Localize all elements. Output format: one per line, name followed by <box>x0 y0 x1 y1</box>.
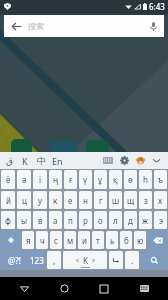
staticText: 123 <box>30 255 44 266</box>
button[interactable]: ғ <box>64 170 77 189</box>
staticText: и <box>82 235 87 246</box>
button[interactable]: Settings <box>116 152 132 169</box>
staticText: ұ <box>98 174 103 185</box>
staticText: у <box>38 195 43 206</box>
button[interactable]: 123 <box>29 251 45 269</box>
button[interactable]: п <box>64 211 77 229</box>
staticText: @?! <box>8 255 21 266</box>
button[interactable]: с <box>50 231 62 249</box>
button[interactable]: и <box>78 231 90 249</box>
staticText: 中 <box>37 155 46 166</box>
button[interactable]: ү <box>79 170 92 189</box>
staticText: ы <box>21 215 28 226</box>
button[interactable]: ю <box>134 231 146 249</box>
staticText: л <box>113 215 118 226</box>
button[interactable]: ө <box>124 170 137 189</box>
button[interactable]: ь <box>106 231 118 249</box>
button[interactable]: Collapse keyboard <box>148 152 164 169</box>
button[interactable]: h <box>139 170 152 189</box>
button[interactable]: Emoji <box>132 152 148 169</box>
button[interactable]: ъ <box>154 170 167 189</box>
button[interactable]: @?! <box>1 251 27 269</box>
button[interactable]: ы <box>17 211 31 229</box>
button[interactable]: к <box>49 191 62 209</box>
button[interactable]: ә <box>17 170 31 189</box>
button[interactable]: K <box>17 152 33 169</box>
button[interactable]: й <box>1 191 15 209</box>
staticText: K <box>22 155 28 167</box>
button[interactable]: м <box>64 231 76 249</box>
button[interactable]: Search <box>141 251 167 269</box>
button[interactable]: н <box>79 191 92 209</box>
button[interactable]: ц <box>17 191 31 209</box>
staticText: ш <box>112 195 120 206</box>
button[interactable]: ф <box>1 211 15 229</box>
button[interactable]: о <box>94 211 107 229</box>
button[interactable]: з <box>139 191 152 209</box>
button[interactable]: ж <box>139 211 152 229</box>
staticText: э <box>159 215 163 226</box>
staticText: ф <box>5 215 11 226</box>
staticText: я <box>26 235 31 246</box>
staticText: ө <box>128 174 133 185</box>
staticText: ү <box>83 174 88 185</box>
button[interactable]: я <box>22 231 34 249</box>
button[interactable]: 中 <box>33 152 49 169</box>
staticText: 6:43 <box>149 1 165 12</box>
button[interactable]: , <box>47 251 61 269</box>
button[interactable]: Return <box>109 251 123 269</box>
button[interactable]: Back <box>8 277 40 300</box>
button[interactable]: ұ <box>94 170 107 189</box>
button[interactable]: б <box>120 231 132 249</box>
button[interactable]: х <box>154 191 167 209</box>
staticText: щ <box>127 195 135 206</box>
button[interactable]: Keyboard layout <box>100 152 116 169</box>
staticText: м <box>67 235 74 246</box>
staticText: ц <box>22 195 27 206</box>
button[interactable]: Space <box>63 251 107 269</box>
staticText: ю <box>137 235 144 246</box>
button[interactable]: En <box>49 152 65 169</box>
button[interactable]: ё <box>1 170 15 189</box>
button[interactable]: Switch keyboard <box>128 277 160 300</box>
button[interactable]: е <box>64 191 77 209</box>
button[interactable]: л <box>109 211 122 229</box>
staticText: г <box>99 195 103 206</box>
button[interactable]: Backspace <box>148 231 167 249</box>
button[interactable]: щ <box>124 191 137 209</box>
button[interactable]: і <box>33 170 47 189</box>
staticText: б <box>124 235 129 246</box>
button[interactable]: ق <box>1 152 17 169</box>
staticText: н <box>83 195 88 206</box>
button[interactable]: Shift <box>1 231 20 249</box>
button[interactable]: э <box>154 211 167 229</box>
staticText: ق <box>6 156 13 166</box>
button[interactable]: Home <box>48 277 80 300</box>
button[interactable]: . <box>125 251 139 269</box>
staticText: ж <box>142 215 149 226</box>
button[interactable]: Voice search <box>142 15 164 37</box>
staticText: с <box>54 235 58 246</box>
button[interactable]: т <box>92 231 104 249</box>
staticText: о <box>98 215 103 226</box>
button[interactable]: в <box>33 211 47 229</box>
button[interactable]: а <box>49 211 62 229</box>
button[interactable]: у <box>33 191 47 209</box>
button[interactable]: ң <box>49 170 62 189</box>
staticText: 搜索 <box>28 21 44 31</box>
button[interactable]: Recents <box>88 277 120 300</box>
button[interactable]: р <box>79 211 92 229</box>
button[interactable]: г <box>94 191 107 209</box>
staticText: т <box>96 235 100 246</box>
button[interactable]: ч <box>36 231 48 249</box>
button[interactable]: Back <box>4 15 28 37</box>
button[interactable]: қ <box>109 170 122 189</box>
staticText: ғ <box>69 174 73 185</box>
staticText: ә <box>22 174 27 185</box>
staticText: і <box>39 174 42 185</box>
button[interactable]: ш <box>109 191 122 209</box>
staticText: к <box>53 195 58 206</box>
staticText: д <box>128 215 133 226</box>
staticText: ъ <box>158 174 163 185</box>
button[interactable]: д <box>124 211 137 229</box>
